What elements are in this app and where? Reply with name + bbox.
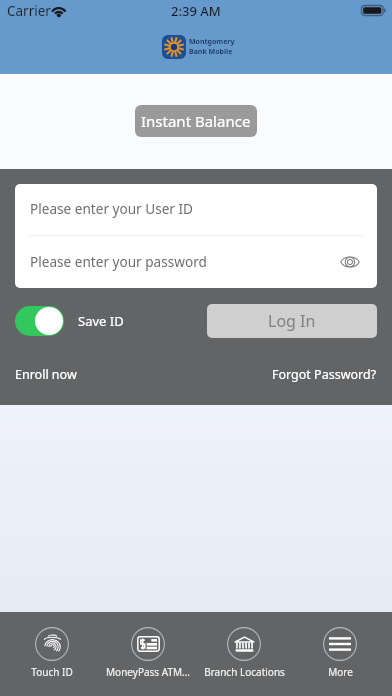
staticText: Bank Mobile [189,47,233,57]
staticText: Log In [268,310,316,332]
button[interactable]: Please enter your password [15,236,377,288]
staticText: Instant Balance [141,111,251,131]
button[interactable]: Forgot Password? [272,366,377,383]
button[interactable]: Log In [207,304,377,338]
staticText: 2:39 AM [171,2,221,20]
staticText: Montgomery [189,37,235,47]
staticText: Forgot Password? [272,366,377,383]
staticText: Save ID [78,312,124,330]
button[interactable]: MoneyPass ATM… [100,612,196,696]
button[interactable]: More [292,612,388,696]
staticText: Please enter your User ID [30,199,194,218]
staticText: Enroll now [15,366,77,383]
staticText: Carrier [7,2,51,20]
button[interactable]: Branch Locations [196,612,292,696]
staticText: More [328,665,353,679]
button[interactable]: Instant Balance [135,105,257,137]
staticText: Please enter your password [30,252,207,271]
button[interactable]: Please enter your User ID [15,184,377,235]
button[interactable]: Show password [337,249,363,275]
button[interactable]: Enroll now [15,366,77,383]
staticText: Touch ID [31,665,73,679]
button[interactable]: Save ID toggle [15,306,64,336]
button[interactable]: Touch ID [4,612,100,696]
staticText: MoneyPass ATM… [106,665,190,679]
staticText: Branch Locations [204,665,285,679]
